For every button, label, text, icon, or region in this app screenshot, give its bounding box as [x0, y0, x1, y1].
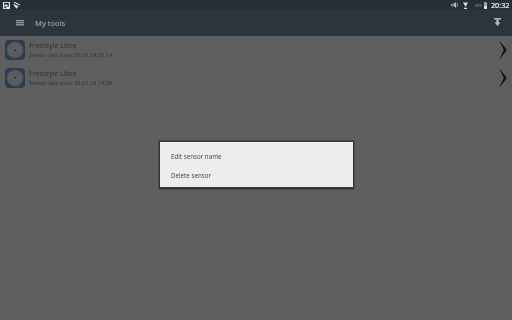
staticText: Edit sensor name — [171, 152, 222, 160]
button[interactable]: Edit sensor name — [160, 147, 353, 165]
button[interactable]: Navigation menu — [9, 10, 30, 36]
staticText: 40% — [475, 3, 482, 8]
button[interactable]: Open sensor — [496, 66, 510, 90]
button[interactable]: Freestyle Libre — [0, 36, 512, 64]
staticText: Delete sensor — [171, 171, 211, 179]
staticText: My tools — [35, 18, 66, 28]
staticText: Sensor last scan: 30.01.18 20.14 — [29, 51, 113, 59]
staticText: Freestyle Libre — [29, 41, 77, 51]
staticText: 20:32 — [491, 0, 510, 10]
button[interactable]: Freestyle Libre — [0, 64, 512, 92]
button[interactable]: Import data — [489, 10, 506, 36]
staticText: Sensor last scan: 30.01.18 14.09 — [29, 79, 113, 87]
button[interactable]: Open sensor — [496, 38, 510, 62]
staticText: Freestyle Libre — [29, 69, 77, 79]
button[interactable]: Delete sensor — [160, 165, 353, 184]
